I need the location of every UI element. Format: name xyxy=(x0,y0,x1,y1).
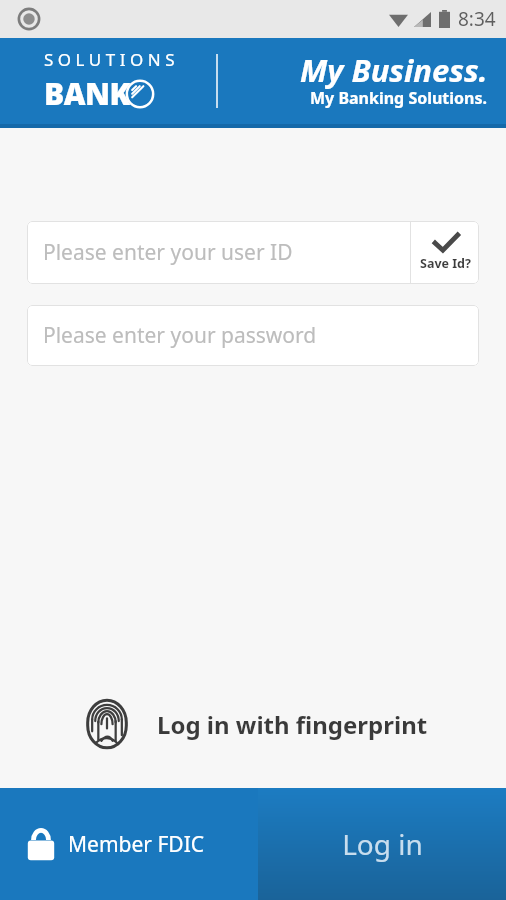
button[interactable]: Save Id xyxy=(411,221,479,284)
button[interactable]: Log in with fingerprint xyxy=(0,696,506,752)
staticText: 8:34 xyxy=(458,6,496,32)
button[interactable]: Please enter your user ID xyxy=(27,221,410,284)
staticText: SOLUTIONS xyxy=(44,48,180,71)
button[interactable]: Member FDIC xyxy=(26,827,205,861)
staticText: Please enter your user ID xyxy=(43,238,293,267)
staticText: My Business. xyxy=(300,49,488,91)
staticText: Save Id? xyxy=(420,255,471,272)
button[interactable]: Log in xyxy=(258,788,506,900)
staticText: Log in xyxy=(342,825,423,863)
staticText: Please enter your password xyxy=(43,321,317,350)
staticText: BANK xyxy=(44,73,130,114)
staticText: My Banking Solutions. xyxy=(310,87,488,109)
staticText: Member FDIC xyxy=(68,830,205,859)
staticText: Log in with fingerprint xyxy=(157,708,428,741)
button[interactable]: Please enter your password xyxy=(27,305,479,366)
